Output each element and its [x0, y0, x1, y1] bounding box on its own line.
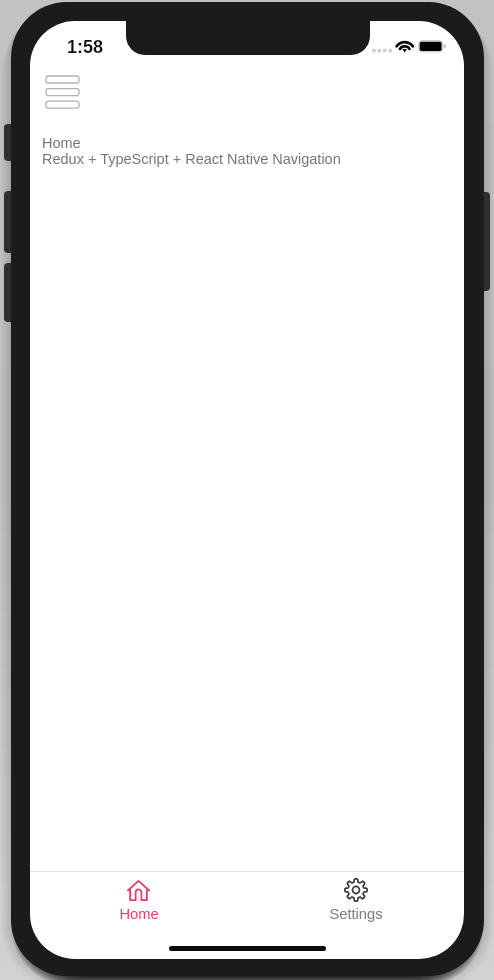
staticText: Redux + TypeScript + React Native Naviga…: [42, 151, 341, 167]
staticText: Settings: [329, 906, 383, 922]
button[interactable]: Settings: [247, 872, 464, 934]
staticText: Home: [42, 135, 81, 151]
staticText: 1:58: [67, 37, 104, 57]
button[interactable]: Open navigation drawer: [38, 69, 86, 116]
button[interactable]: Home: [30, 872, 247, 934]
staticText: Home: [119, 906, 159, 922]
